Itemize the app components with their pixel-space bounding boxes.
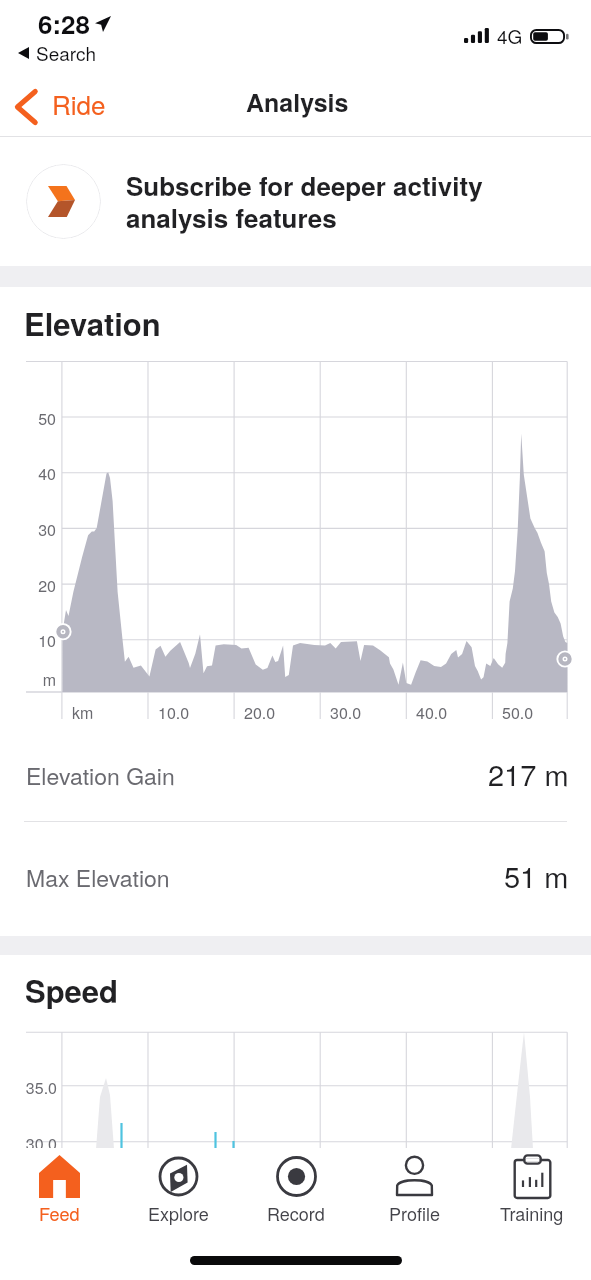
button[interactable]: Elevation Gain bbox=[0, 724, 591, 826]
staticText: 20 bbox=[12, 574, 56, 597]
staticText: Analysis bbox=[246, 84, 349, 120]
button[interactable]: Profile bbox=[355, 1148, 473, 1226]
button[interactable]: Explore bbox=[119, 1148, 237, 1226]
button[interactable]: Max Elevation bbox=[0, 826, 591, 928]
staticText: km bbox=[72, 701, 94, 724]
staticText: 10 bbox=[12, 629, 56, 652]
staticText: 217 m bbox=[488, 753, 569, 795]
staticText: 50 bbox=[12, 407, 56, 430]
button[interactable]: Back to Ride bbox=[0, 80, 120, 133]
staticText: 51 m bbox=[504, 855, 569, 897]
staticText: Elevation Gain bbox=[26, 759, 175, 792]
staticText: 50.0 bbox=[502, 701, 534, 724]
staticText: m bbox=[12, 668, 56, 691]
staticText: Elevation bbox=[24, 301, 161, 345]
staticText: Training bbox=[500, 1200, 564, 1226]
button[interactable]: Subscribe for deeper activity analysis f… bbox=[0, 137, 591, 266]
staticText: Feed bbox=[39, 1200, 80, 1226]
button[interactable]: Record bbox=[237, 1148, 355, 1226]
staticText: Explore bbox=[148, 1200, 209, 1226]
staticText: 10.0 bbox=[158, 701, 190, 724]
staticText: 30.0 bbox=[330, 701, 362, 724]
staticText: Search bbox=[36, 39, 97, 66]
staticText: Speed bbox=[25, 968, 119, 1012]
staticText: 35.0 bbox=[13, 1076, 57, 1099]
staticText: 40 bbox=[12, 462, 56, 485]
button[interactable]: Training bbox=[473, 1148, 591, 1226]
staticText: Max Elevation bbox=[26, 861, 170, 894]
staticText: Ride bbox=[52, 85, 106, 122]
staticText: Profile bbox=[389, 1200, 440, 1226]
staticText: 30.0 bbox=[13, 1132, 57, 1155]
button[interactable]: Feed bbox=[0, 1148, 119, 1226]
staticText: 4G bbox=[497, 22, 523, 49]
staticText: 6:28 bbox=[38, 5, 91, 42]
staticText: 30 bbox=[12, 518, 56, 541]
staticText: Record bbox=[267, 1200, 325, 1226]
staticText: Subscribe for deeper activity analysis f… bbox=[126, 167, 483, 236]
staticText: 20.0 bbox=[244, 701, 276, 724]
staticText: 40.0 bbox=[416, 701, 448, 724]
